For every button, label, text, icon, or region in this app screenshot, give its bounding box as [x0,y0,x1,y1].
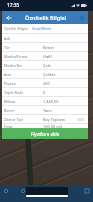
button[interactable]: Marka/Firma [2,52,88,60]
staticText: Piyasa [4,81,16,86]
staticText: 0 [43,90,46,95]
staticText: 17:35 [7,2,20,9]
button[interactable]: Stok/Birim [30,24,54,33]
staticText: Stok/Birim [32,26,52,31]
staticText: Tepki Riski [4,90,23,95]
staticText: Marka/Firma [4,54,28,59]
staticText: Çelikte [43,72,56,77]
staticText: Özellik Bilgisi [4,26,28,31]
staticText: Hafif [43,54,52,59]
button[interactable]: Piyasa [2,79,88,87]
button[interactable]: Birim [2,106,88,114]
staticText: Öznitelik Bilgisi [25,14,66,22]
staticText: Tür [4,45,10,50]
button[interactable]: Fiyat [2,124,88,128]
staticText: 260 [43,81,50,86]
button[interactable]: Demir Tipi [2,115,88,123]
button[interactable]: Recents [82,186,92,196]
staticText: Birim [4,108,14,113]
staticText: Beton [43,45,54,50]
button[interactable]: Fiyatlara ekle [2,128,88,139]
button[interactable]: Miktar [2,97,88,105]
staticText: Marka No [4,63,22,68]
staticText: Fiyatlara ekle [31,131,60,137]
staticText: Ane [4,72,12,77]
button[interactable]: Marka No [2,61,88,69]
staticText: Çeki [43,63,51,68]
staticText: 100,00 m3 [43,124,63,128]
staticText: Boy Toplamı [43,117,66,122]
button[interactable]: Ane [2,70,88,78]
button[interactable]: Back [2,11,15,24]
staticText: Demir Tipi [4,117,23,122]
button[interactable]: Tepki Riski [2,88,88,96]
button[interactable]: Adı [2,34,88,42]
staticText: Fiyat [4,124,13,128]
staticText: 1.440,56 [43,99,59,104]
button[interactable]: More options [75,11,88,24]
button[interactable]: Toggle [77,118,84,121]
staticText: Miktar [4,99,16,104]
button[interactable]: Back [1,186,11,196]
button[interactable]: Özellik Bilgisi [2,24,30,33]
button[interactable]: Home [18,186,28,196]
staticText: Adı [4,36,10,41]
button[interactable]: Tür [2,43,88,51]
staticText: Tane [43,108,52,113]
